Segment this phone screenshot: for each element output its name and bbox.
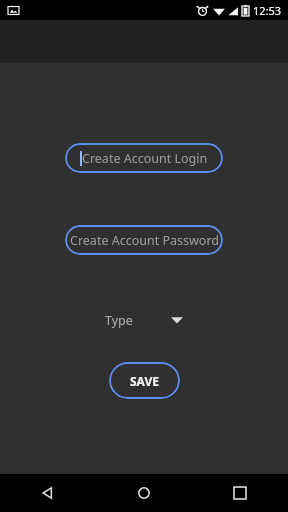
button[interactable]: Recent apps: [192, 474, 288, 512]
button[interactable]: Create Account Password: [65, 225, 223, 255]
staticText: SAVE: [130, 373, 159, 389]
button[interactable]: Type: [105, 308, 183, 332]
staticText: 12:53: [253, 3, 282, 18]
button[interactable]: Home: [96, 474, 192, 512]
staticText: Type: [105, 312, 133, 329]
button[interactable]: SAVE: [109, 362, 180, 399]
button[interactable]: Create Account Login: [65, 143, 223, 173]
staticText: Create Account Password: [70, 232, 219, 249]
staticText: Create Account Login: [82, 150, 208, 167]
button[interactable]: Back: [0, 474, 96, 512]
